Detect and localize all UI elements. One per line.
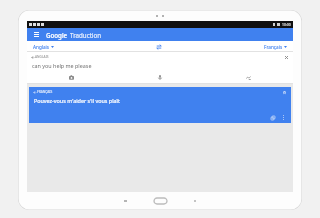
button[interactable]: Menu bbox=[32, 30, 41, 39]
staticText: Pouvez-vous m'aider s'il vous plaît bbox=[34, 97, 120, 104]
button[interactable]: Swap languages bbox=[154, 42, 163, 51]
staticText: Anglais bbox=[33, 44, 50, 50]
button[interactable]: More options bbox=[280, 114, 287, 121]
button[interactable]: Handwriting input bbox=[244, 73, 253, 82]
button[interactable]: Recent apps bbox=[190, 196, 200, 206]
staticText: ANGLAIS bbox=[35, 55, 49, 59]
staticText: Français bbox=[264, 44, 283, 50]
staticText: Google bbox=[46, 31, 68, 39]
button[interactable]: Back bbox=[120, 196, 130, 206]
staticText: FRANÇAIS bbox=[37, 90, 53, 94]
button[interactable]: Home bbox=[152, 196, 168, 206]
button[interactable]: Save translation bbox=[281, 89, 287, 95]
button[interactable]: Anglais bbox=[31, 43, 56, 51]
button[interactable]: Français bbox=[262, 43, 289, 51]
staticText: Traduction bbox=[70, 31, 102, 39]
staticText: can you help me please bbox=[32, 62, 92, 69]
button[interactable]: FRANÇAIS bbox=[29, 87, 291, 123]
button[interactable]: Clear bbox=[283, 54, 289, 60]
button[interactable]: Camera input bbox=[67, 73, 76, 82]
button[interactable]: Copy bbox=[269, 114, 276, 121]
staticText: 10:00 bbox=[282, 22, 291, 27]
button[interactable]: Voice input bbox=[155, 73, 164, 82]
